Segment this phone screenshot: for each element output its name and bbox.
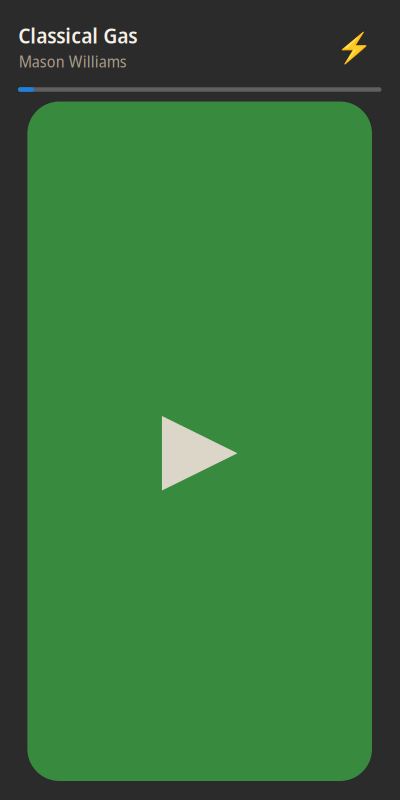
button[interactable]: Play [27, 101, 372, 781]
staticText: Mason Williams [19, 50, 127, 72]
staticText: Classical Gas [18, 21, 137, 50]
button[interactable]: Boost [335, 31, 372, 64]
button[interactable]: Scrub [18, 87, 381, 92]
staticText: ⚡ [335, 31, 372, 64]
